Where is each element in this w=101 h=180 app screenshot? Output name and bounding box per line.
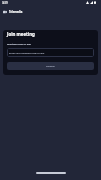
staticText: Telemedia xyxy=(9,10,23,14)
staticText: Enter your meeting code or link xyxy=(9,51,45,54)
button[interactable]: Enter your meeting code or link xyxy=(7,48,94,57)
staticText: 3:39 xyxy=(2,1,8,5)
staticText: Meeting code or link xyxy=(7,42,32,45)
button[interactable]: Continue xyxy=(7,62,94,70)
staticText: Continue xyxy=(46,65,55,68)
staticText: Join meeting xyxy=(7,31,35,37)
button[interactable]: Telemedia xyxy=(3,10,7,14)
